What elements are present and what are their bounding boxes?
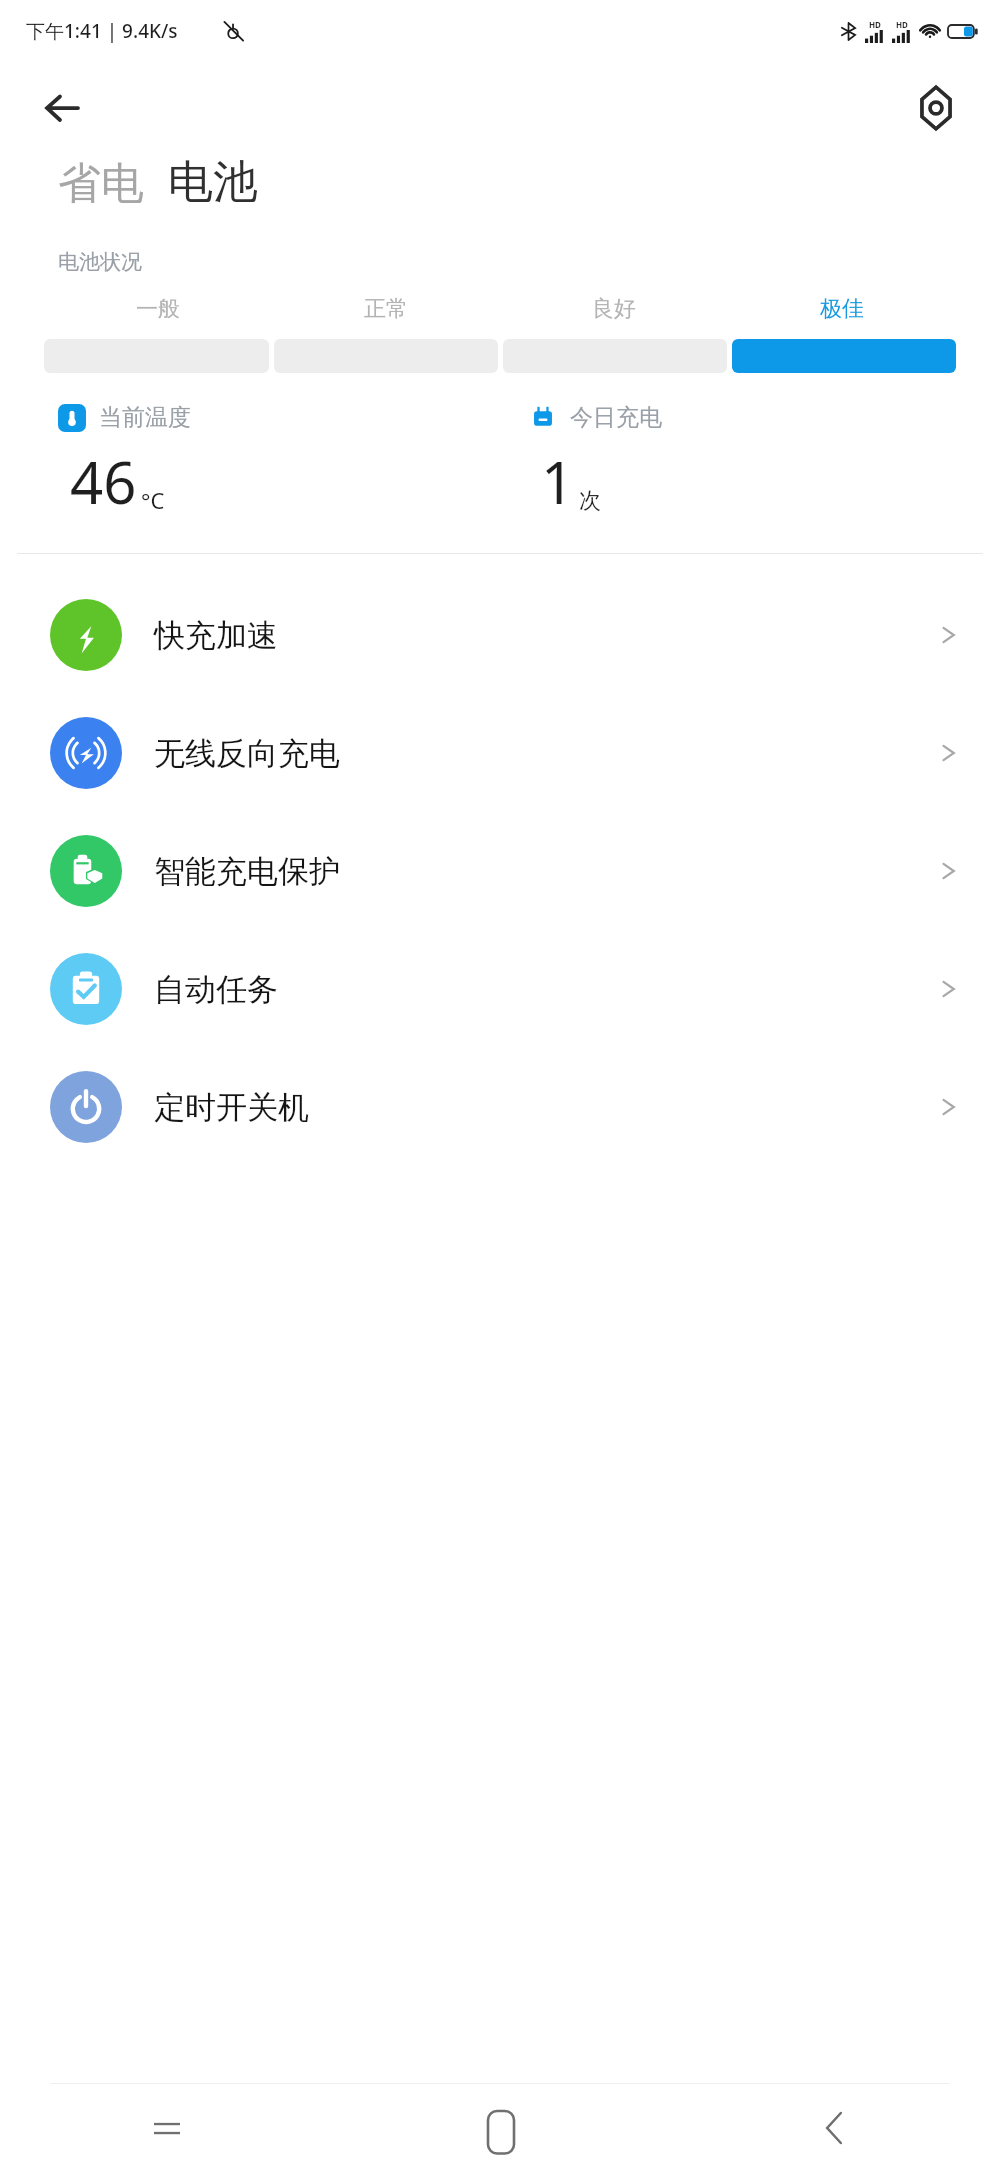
button[interactable]: Settings — [910, 82, 962, 134]
staticText: 自动任务 — [154, 970, 278, 1009]
button[interactable]: 自动任务 — [0, 930, 1000, 1048]
staticText: 1 — [541, 442, 575, 521]
button[interactable]: 省电 — [58, 157, 144, 211]
staticText: 次 — [579, 487, 601, 515]
staticText: °C — [141, 485, 165, 515]
button[interactable]: 智能充电保护 — [0, 812, 1000, 930]
button[interactable]: Back — [40, 83, 90, 133]
staticText: 正常 — [364, 295, 408, 323]
staticText: 电池 — [168, 154, 258, 211]
button[interactable]: 电池 — [168, 154, 258, 211]
staticText: 当前温度 — [99, 403, 191, 432]
staticText: 46 — [70, 442, 137, 521]
staticText: 省电 — [58, 157, 144, 211]
button[interactable]: 无线反向充电 — [0, 694, 1000, 812]
staticText: 定时开关机 — [154, 1088, 309, 1127]
button[interactable]: Back — [667, 2084, 1000, 2172]
staticText: 电池状况 — [58, 249, 142, 275]
button[interactable]: 定时开关机 — [0, 1048, 1000, 1166]
staticText: 下午1:41 | 9.4K/s — [26, 18, 178, 44]
staticText: 快充加速 — [154, 616, 278, 655]
staticText: HD — [896, 19, 908, 30]
button[interactable]: Home — [334, 2084, 667, 2172]
staticText: 极佳 — [820, 295, 864, 323]
staticText: 无线反向充电 — [154, 734, 340, 773]
staticText: 良好 — [592, 295, 636, 323]
button[interactable]: Recents — [0, 2084, 334, 2172]
staticText: 智能充电保护 — [154, 852, 340, 891]
button[interactable]: 快充加速 — [0, 576, 1000, 694]
staticText: HD — [869, 19, 881, 30]
staticText: 一般 — [136, 295, 180, 323]
staticText: 今日充电 — [570, 403, 662, 432]
